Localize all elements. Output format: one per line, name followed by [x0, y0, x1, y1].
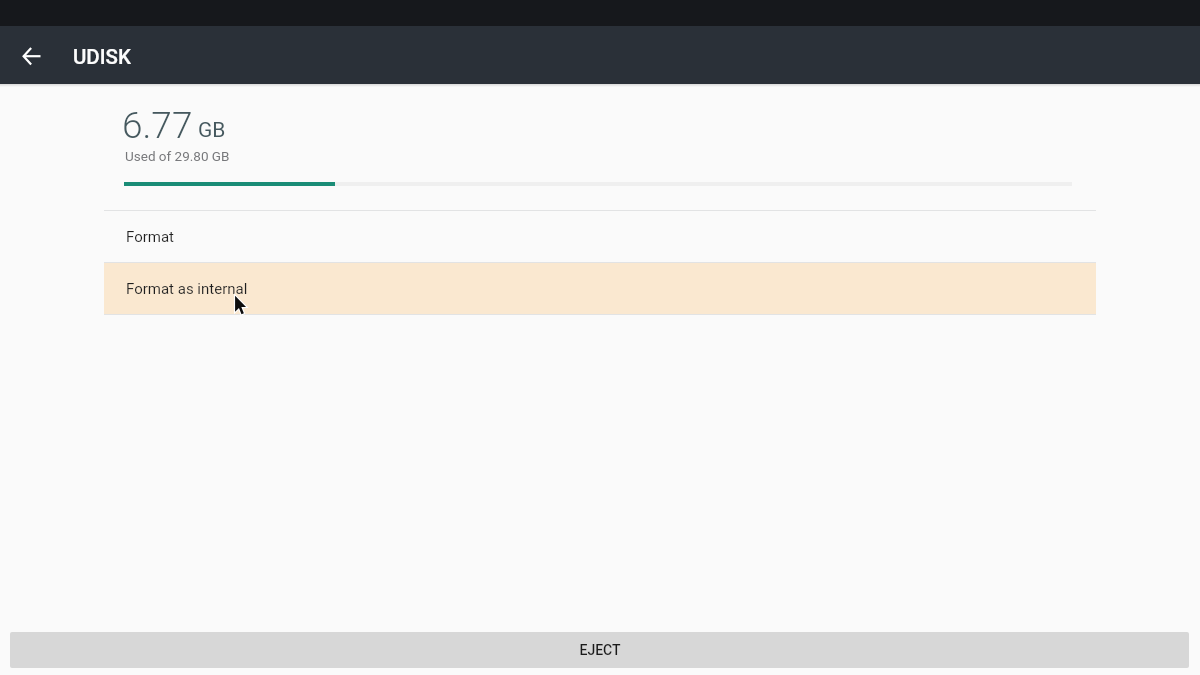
button[interactable]: Navigate up [0, 26, 58, 84]
staticText: UDISK [73, 45, 131, 69]
staticText: EJECT [579, 642, 621, 658]
button[interactable]: Format [104, 211, 1096, 263]
staticText: GB [198, 118, 226, 143]
button[interactable]: Format as internal [104, 263, 1096, 314]
staticText: Format [126, 228, 174, 246]
staticText: 6.77 [122, 104, 193, 147]
button[interactable]: EJECT [10, 632, 1189, 668]
staticText: Format as internal [126, 280, 248, 298]
staticText: Used of 29.80 GB [125, 148, 230, 164]
